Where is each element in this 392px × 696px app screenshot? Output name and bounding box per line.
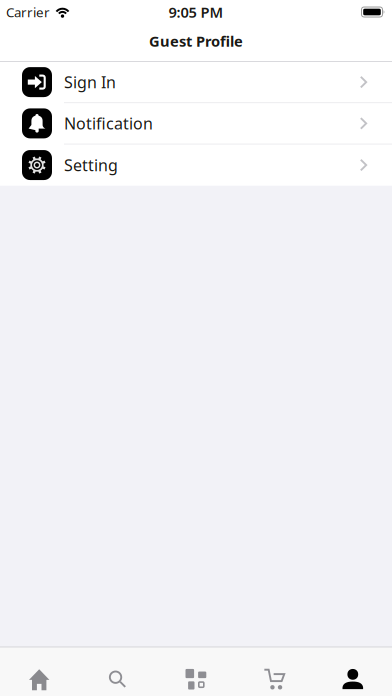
staticText: Carrier	[6, 3, 50, 21]
staticText: Guest Profile	[149, 31, 243, 51]
staticText: Sign In	[64, 71, 116, 93]
button[interactable]: Sign In	[0, 62, 392, 103]
button[interactable]: Profile	[314, 647, 392, 696]
button[interactable]: Cart	[235, 647, 314, 696]
staticText: Setting	[64, 154, 118, 176]
button[interactable]: Categories	[157, 647, 235, 696]
button[interactable]: Search	[78, 647, 157, 696]
staticText: Notification	[64, 113, 153, 134]
button[interactable]: Home	[0, 647, 78, 696]
button[interactable]: Setting	[0, 144, 392, 186]
button[interactable]: Notification	[0, 103, 392, 144]
staticText: 9:05 PM	[168, 2, 223, 22]
